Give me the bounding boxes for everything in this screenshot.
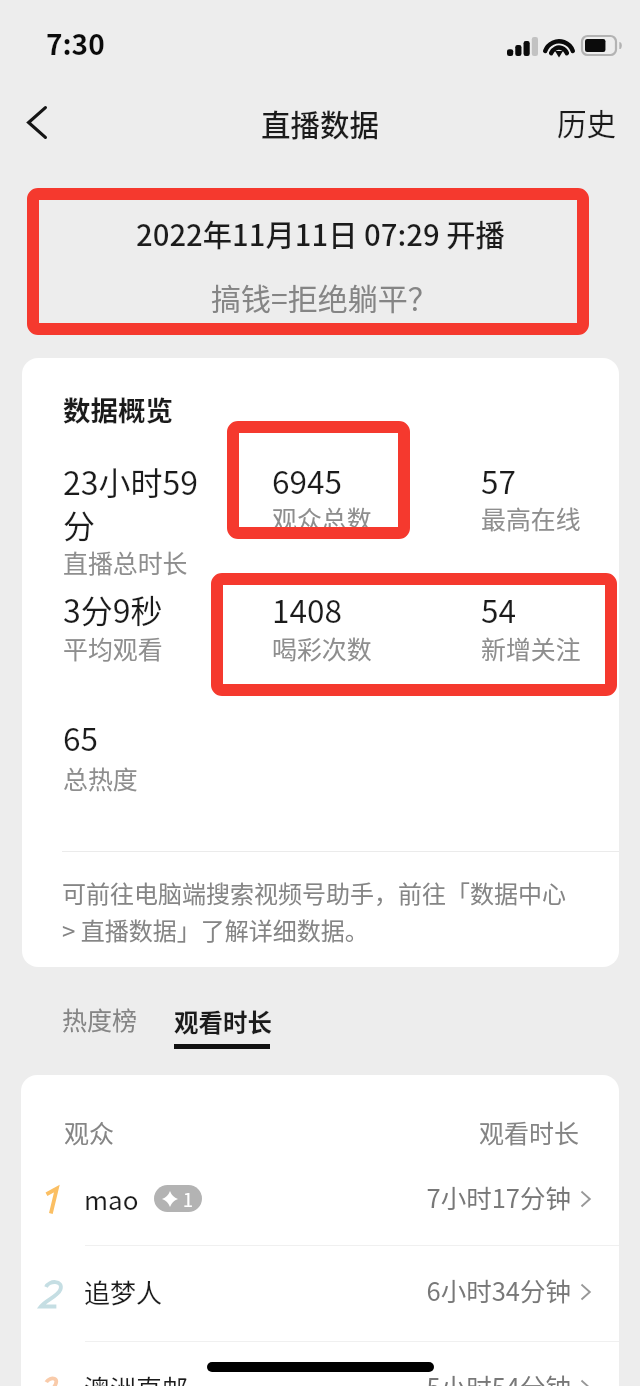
staticText: 2022年11月11日 07:29 开播 <box>136 212 505 254</box>
staticText: 追梦人 <box>84 1273 163 1311</box>
staticText: 直播总时长 <box>63 544 188 580</box>
staticText: 观看时长 <box>174 1004 272 1039</box>
staticText: 54 <box>481 586 516 632</box>
staticText: 数据概览 <box>63 389 173 429</box>
staticText: 23小时59分 <box>63 458 213 548</box>
staticText: 直播数据 <box>261 102 380 145</box>
staticText: 观看时长 <box>479 1114 580 1150</box>
staticText: mao <box>84 1180 139 1218</box>
staticText: 3分9秒 <box>63 586 163 632</box>
button[interactable]: 观看时长 <box>174 1004 272 1049</box>
staticText: 最高在线 <box>481 500 581 536</box>
staticText: 7小时17分钟 <box>424 1178 571 1215</box>
staticText: 65 <box>63 714 98 760</box>
staticText: 搞钱=拒绝躺平？ <box>211 275 438 318</box>
staticText: 可前往电脑端搜索视频号助手，前往「数据中心 > 直播数据」了解详细数据。 <box>62 875 572 947</box>
button[interactable]: 澳洲直邮 <box>21 1363 619 1386</box>
button[interactable]: Back <box>8 94 65 151</box>
staticText: 观众总数 <box>272 500 372 536</box>
staticText: 历史 <box>557 101 617 144</box>
staticText: 喝彩次数 <box>272 630 372 666</box>
staticText: 1 <box>183 1186 193 1212</box>
staticText: 热度榜 <box>62 1001 138 1037</box>
staticText: 6小时34分钟 <box>424 1271 571 1308</box>
staticText: 1408 <box>272 586 342 632</box>
staticText: 6945 <box>272 457 342 503</box>
button[interactable]: 热度榜 <box>62 1001 138 1037</box>
staticText: 新增关注 <box>481 630 581 666</box>
staticText: 观众 <box>64 1114 115 1150</box>
staticText: 5小时54分钟 <box>424 1367 571 1386</box>
staticText: 57 <box>481 457 516 503</box>
button[interactable]: 追梦人 <box>21 1267 619 1360</box>
staticText: 7:30 <box>46 23 105 64</box>
staticText: 总热度 <box>63 760 138 796</box>
staticText: 澳洲直邮 <box>84 1369 189 1386</box>
button[interactable]: mao <box>21 1174 619 1267</box>
button[interactable]: 历史 <box>544 98 630 146</box>
staticText: 平均观看 <box>63 630 163 666</box>
